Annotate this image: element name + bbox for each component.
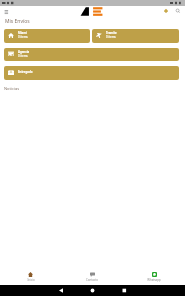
button[interactable]: Miami <box>4 29 90 43</box>
staticText: Tramite <box>106 31 117 35</box>
staticText: Entregado <box>18 70 33 74</box>
staticText: 0 items <box>18 35 28 39</box>
staticText: Whatsapp <box>147 278 161 282</box>
button[interactable]: Menu <box>4 8 12 16</box>
button[interactable]: Agencia <box>4 48 179 61</box>
staticText: 0 items <box>18 54 28 58</box>
button[interactable]: Tramite <box>92 29 179 43</box>
button[interactable]: Entregado <box>4 66 179 80</box>
button[interactable]: Notifications <box>161 6 171 16</box>
button[interactable]: Whatsapp <box>123 270 185 284</box>
button[interactable]: Contacto <box>61 270 123 284</box>
staticText: Agencia <box>18 50 30 54</box>
staticText: 0 items <box>106 35 116 39</box>
staticText: Mis Envíos <box>5 18 30 25</box>
staticText: Inicio <box>27 278 35 282</box>
button[interactable]: Inicio <box>0 270 61 284</box>
button[interactable]: Search <box>173 6 183 16</box>
staticText: Noticias <box>4 86 20 91</box>
staticText: Contacto <box>86 278 98 282</box>
staticText: Miami <box>18 31 27 35</box>
